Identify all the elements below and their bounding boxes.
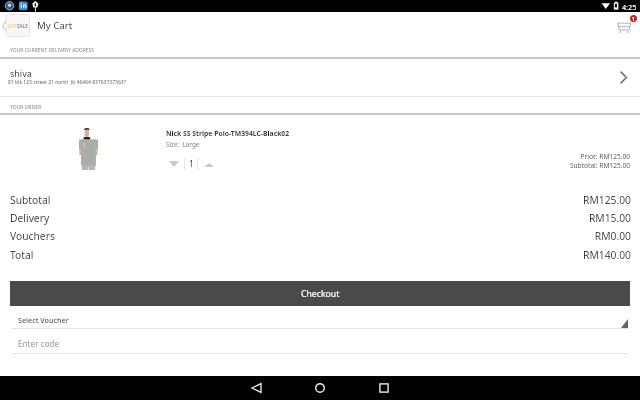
staticText: 1 <box>632 16 635 22</box>
staticText: SALE <box>17 23 28 29</box>
staticText: YOUR CURRENT DELIVERY ADDRESS <box>10 47 95 54</box>
staticText: Subtotal: RM125.00 <box>500 161 630 170</box>
button[interactable]: Back <box>0 15 8 36</box>
button[interactable]: Edit address <box>608 63 634 91</box>
button[interactable]: Select Voucher <box>10 313 630 329</box>
button[interactable]: Enter code <box>10 337 630 352</box>
staticText: YOUR ORDER <box>10 104 42 111</box>
button[interactable]: Back <box>236 376 276 400</box>
staticText: RM125.00 <box>0 193 631 207</box>
staticText: Subtotal <box>10 193 51 207</box>
staticText: Total <box>10 248 34 262</box>
staticText: RM140.00 <box>0 248 631 262</box>
staticText: Vouchers <box>10 229 55 243</box>
button[interactable]: Checkout <box>10 281 630 306</box>
button[interactable]: Decrease quantity <box>165 157 183 170</box>
staticText: OFF <box>8 23 17 29</box>
button[interactable]: Store logo <box>6 14 30 37</box>
staticText: Size: Large <box>166 140 200 149</box>
button[interactable]: Recent apps <box>364 376 404 400</box>
button[interactable]: Total <box>0 248 640 263</box>
button[interactable]: Delivery <box>0 211 640 226</box>
staticText: 1 <box>189 158 194 169</box>
button[interactable]: shiva <box>0 58 640 96</box>
staticText: shiva <box>10 67 32 79</box>
staticText: Delivery <box>10 211 50 225</box>
staticText: Select Voucher <box>18 315 69 325</box>
staticText: My Cart <box>37 19 73 32</box>
staticText: 4:25 <box>622 2 637 12</box>
button[interactable]: Home <box>300 376 340 400</box>
staticText: Checkout <box>301 288 340 300</box>
button[interactable]: Increase quantity <box>199 157 217 170</box>
staticText: Nick SS Stripe Polo-TM394LC-Black02 <box>166 129 290 138</box>
staticText: Enter code <box>18 338 60 349</box>
staticText: Price: RM125.00 <box>500 152 630 161</box>
button[interactable]: Vouchers <box>0 229 640 244</box>
staticText: RM0.00 <box>0 229 631 243</box>
staticText: RM15.00 <box>0 211 631 225</box>
button[interactable]: Subtotal <box>0 193 640 208</box>
button[interactable]: Shopping cart <box>612 13 638 37</box>
staticText: 81 blk 123 street 21 north Jb 46464 8376… <box>8 79 126 86</box>
